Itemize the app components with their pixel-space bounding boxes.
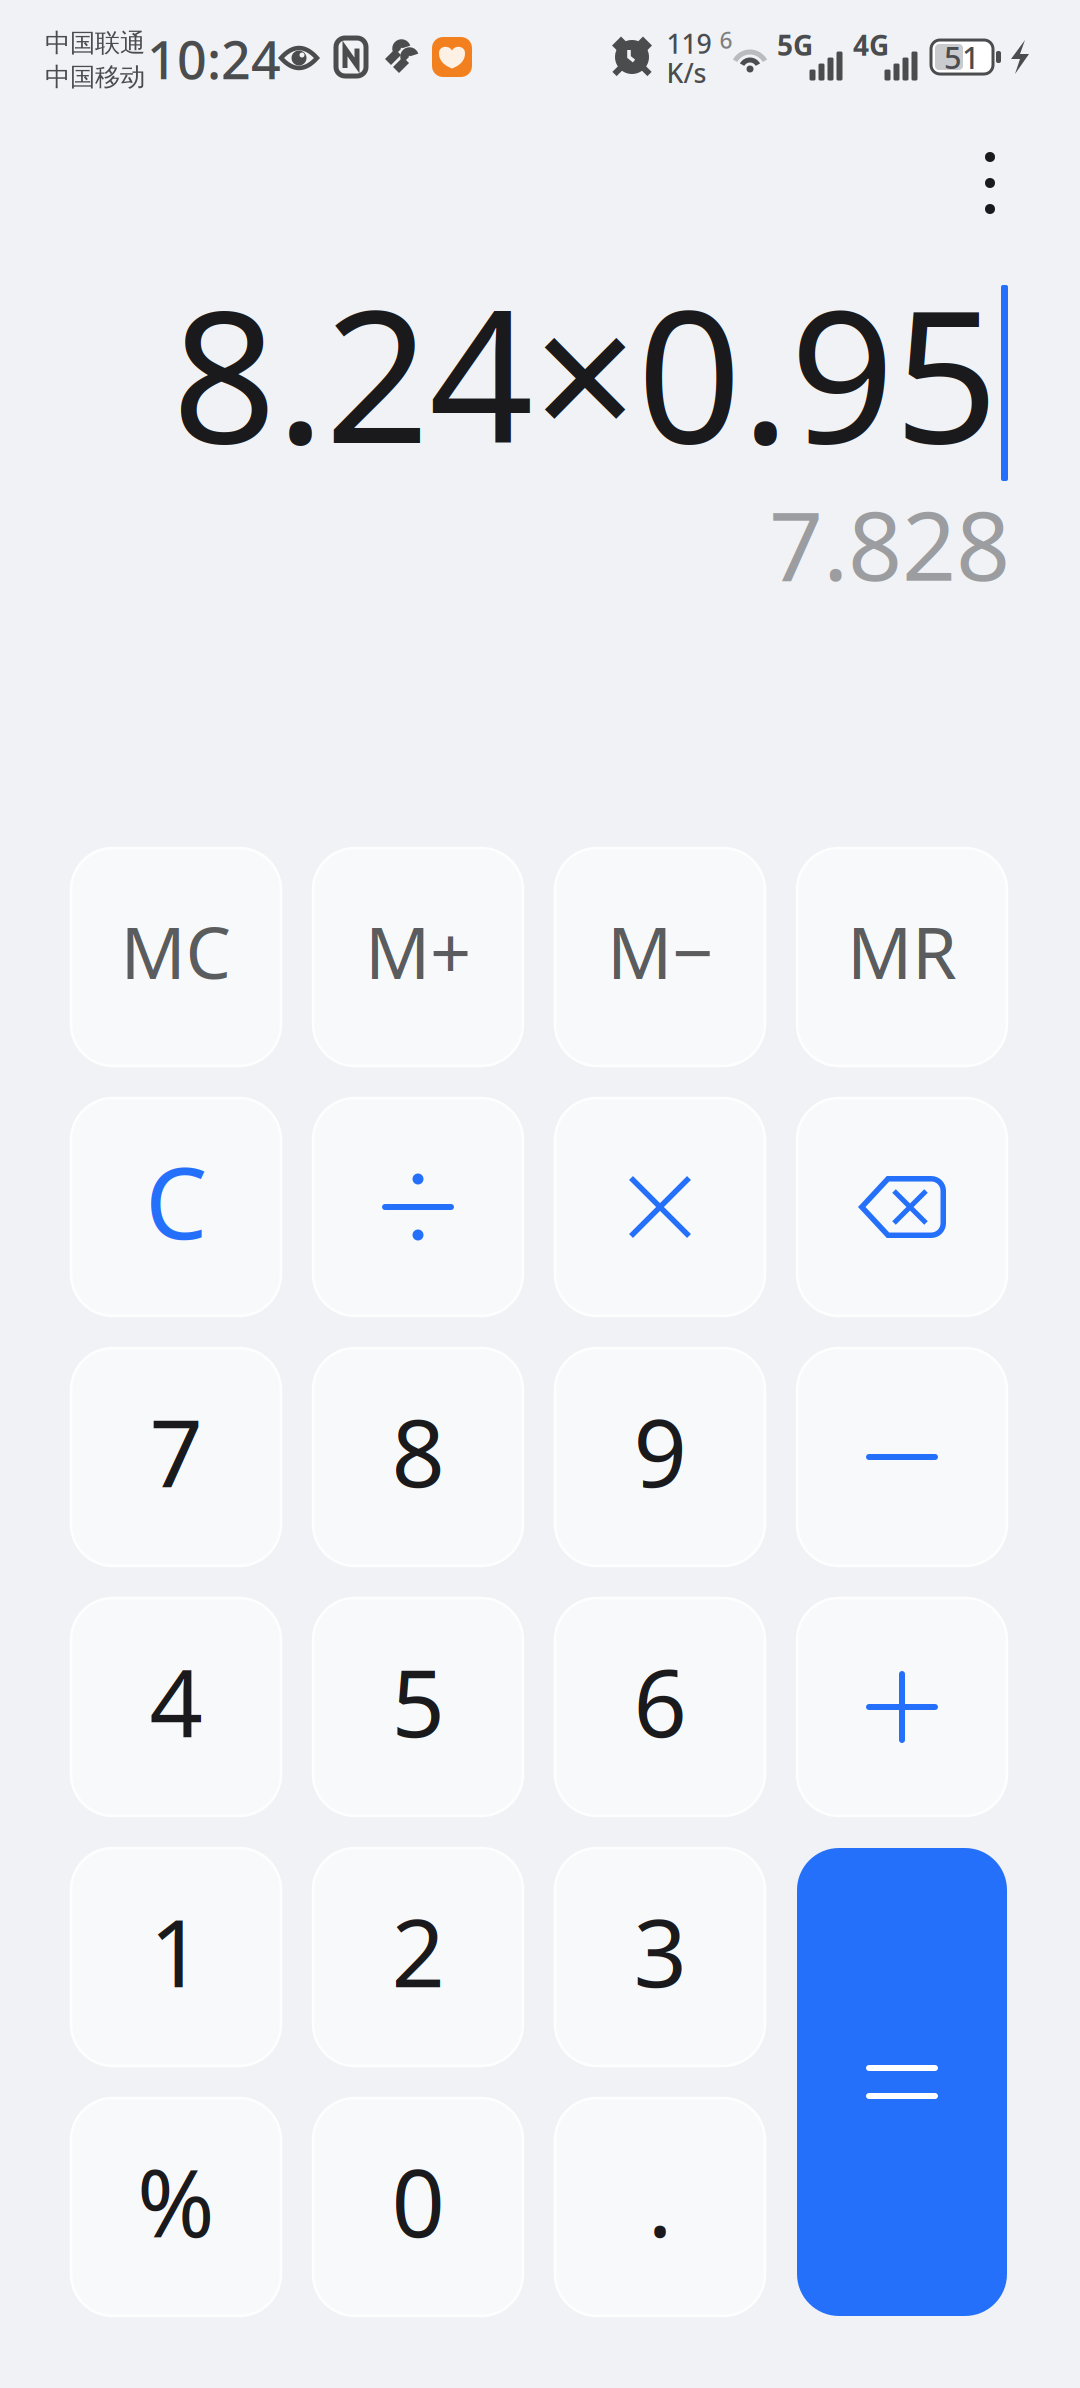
staticText: 9	[633, 1389, 686, 1513]
staticText: 0	[391, 2139, 444, 2263]
staticText: 7	[149, 1389, 202, 1513]
staticText: 3	[633, 1889, 686, 2013]
staticText: 5G	[777, 26, 813, 64]
staticText: 51	[944, 37, 980, 77]
staticText: 1	[149, 1889, 202, 2013]
staticText: K/s	[666, 55, 706, 90]
button[interactable]	[555, 2098, 765, 2316]
staticText: 中国移动	[45, 61, 145, 93]
button[interactable]	[71, 1848, 281, 2066]
button[interactable]	[313, 848, 523, 1066]
staticText: 5	[391, 1639, 444, 1763]
staticText: M−	[607, 903, 713, 999]
staticText: 6	[633, 1639, 686, 1763]
button[interactable]	[313, 1848, 523, 2066]
button[interactable]	[797, 848, 1007, 1066]
button[interactable]	[71, 2098, 281, 2316]
button[interactable]: Plus	[797, 1598, 1007, 1816]
button[interactable]: Delete	[797, 1098, 1007, 1316]
button[interactable]	[71, 1348, 281, 1566]
button[interactable]	[71, 1098, 281, 1316]
staticText: 6	[719, 25, 732, 55]
staticText: 2	[391, 1889, 444, 2013]
button[interactable]: More options	[942, 125, 1038, 241]
staticText: MC	[120, 903, 231, 999]
staticText: 4G	[853, 26, 889, 64]
staticText: C	[145, 1135, 207, 1266]
button[interactable]	[313, 1598, 523, 1816]
staticText: .	[647, 2139, 672, 2263]
button[interactable]	[555, 848, 765, 1066]
button[interactable]	[71, 848, 281, 1066]
button[interactable]	[71, 1598, 281, 1816]
staticText: 8	[391, 1389, 444, 1513]
staticText: MR	[847, 903, 957, 999]
button[interactable]: Multiply	[555, 1098, 765, 1316]
staticText: 119	[666, 26, 711, 61]
button[interactable]	[555, 1848, 765, 2066]
button[interactable]	[313, 2098, 523, 2316]
staticText: 10:24	[147, 24, 281, 94]
button[interactable]: Equals	[797, 1848, 1007, 2316]
staticText: M+	[365, 903, 471, 999]
button[interactable]	[313, 1348, 523, 1566]
button[interactable]: Minus	[797, 1348, 1007, 1566]
staticText: 8.24×0.95	[172, 251, 998, 493]
button[interactable]	[555, 1348, 765, 1566]
staticText: 中国联通	[45, 27, 145, 58]
button[interactable]: Divide	[313, 1098, 523, 1316]
staticText: 4	[149, 1639, 202, 1763]
staticText: %	[137, 2139, 215, 2263]
button[interactable]	[555, 1598, 765, 1816]
staticText: 7.828	[769, 481, 1010, 607]
